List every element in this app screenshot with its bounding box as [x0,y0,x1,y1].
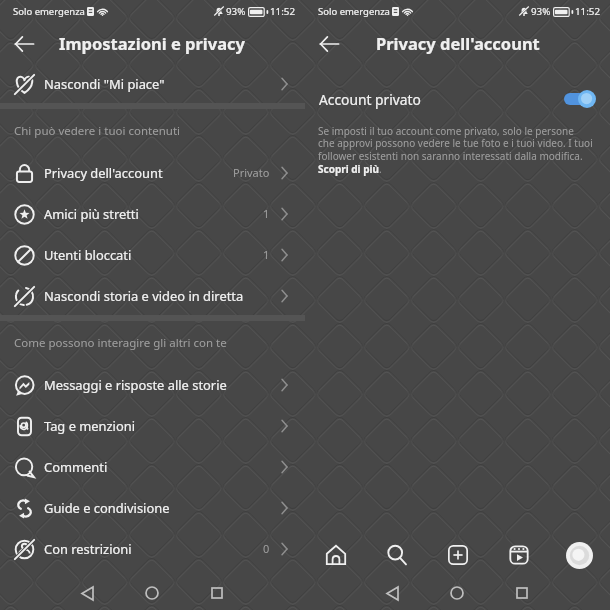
staticText: Con restrizioni [44,540,132,558]
staticText: 11:52 [270,5,296,18]
button[interactable]: Home [443,579,471,607]
staticText: 0 [263,541,270,556]
button[interactable]: Home [138,579,166,607]
button[interactable]: Back [313,27,345,59]
staticText: Privacy dell'account [44,164,163,182]
staticText: Nascondi storia e video in diretta [44,287,244,305]
staticText: Come possono interagire gli altri con te [14,335,227,351]
button[interactable]: Back [73,579,101,607]
staticText: 93% [226,5,246,18]
button[interactable]: Search [366,534,427,576]
staticText: 93% [531,5,551,18]
button[interactable]: Tag e menzioni [0,405,305,446]
staticText: Amici più stretti [44,205,139,223]
staticText: Messaggi e risposte alle storie [44,376,227,394]
staticText: Impostazioni e privacy [59,32,246,54]
button[interactable]: Nascondi storia e video in diretta [0,275,305,316]
button[interactable]: Messaggi e risposte alle storie [0,364,305,405]
button[interactable]: Guide e condivisione [0,487,305,528]
staticText: Solo emergenza [13,5,85,18]
button[interactable]: Reels [488,534,549,576]
button[interactable]: Nascondi "Mi piace" [0,63,305,104]
button[interactable]: Recents [508,579,536,607]
button[interactable]: Create [427,534,488,576]
staticText: 11:52 [575,5,601,18]
staticText: Privato [233,165,270,180]
button[interactable]: Amici più stretti [0,193,305,234]
button[interactable]: Account privato [305,82,610,116]
button[interactable]: Profile [549,534,610,576]
button[interactable]: Privacy dell'account [0,152,305,193]
button[interactable]: Back [378,579,406,607]
button[interactable]: Commenti [0,446,305,487]
button[interactable]: Con restrizioni [0,528,305,569]
staticText: Se imposti il tuo account come privato, … [318,124,610,176]
button[interactable]: Utenti bloccati [0,234,305,275]
button[interactable]: Recents [203,579,231,607]
staticText: 1 [263,247,270,262]
button[interactable]: Back [8,27,40,59]
staticText: Tag e menzioni [44,417,136,435]
staticText: Nascondi "Mi piace" [44,75,165,93]
button[interactable]: Home [305,534,366,576]
staticText: Solo emergenza [318,5,390,18]
staticText: Chi può vedere i tuoi contenuti [14,123,181,139]
staticText: Account privato [319,90,421,109]
staticText: Privacy dell'account [376,32,540,54]
staticText: Commenti [44,458,108,476]
staticText: Utenti bloccati [44,246,132,264]
staticText: Guide e condivisione [44,499,170,517]
staticText: 1 [263,206,270,221]
